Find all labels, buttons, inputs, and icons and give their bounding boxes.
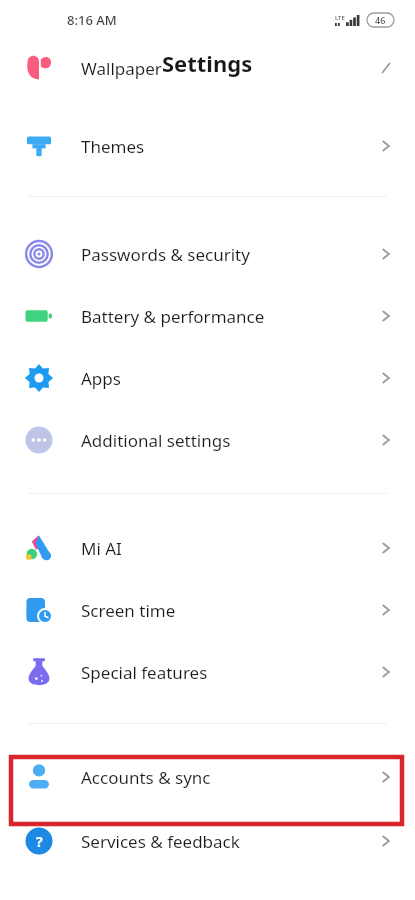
staticText: Services & feedback [81, 830, 240, 853]
staticText: Apps [81, 367, 121, 390]
button[interactable]: Mi AI [0, 517, 415, 579]
staticText: Mi AI [81, 537, 122, 560]
staticText: Special features [81, 661, 208, 684]
other: Open Mi AI [378, 540, 394, 556]
other: Open Special features [378, 664, 394, 680]
staticText: Accounts & sync [81, 766, 211, 789]
staticText: Screen time [81, 599, 176, 622]
staticText: Wallpaper [81, 57, 162, 80]
other: Edit Wallpaper [378, 60, 394, 76]
button[interactable]: Themes [0, 115, 415, 177]
button[interactable]: Apps [0, 347, 415, 409]
other: Open Services & feedback [378, 833, 394, 849]
other: Open Additional settings [378, 432, 394, 448]
staticText: Passwords & security [81, 243, 250, 266]
other: Open Screen time [378, 602, 394, 618]
other: Open Apps [378, 370, 394, 386]
other: Open Passwords & security [378, 246, 394, 262]
staticText: Battery & performance [81, 305, 265, 328]
button[interactable]: Additional settings [0, 409, 415, 471]
staticText: Settings [162, 48, 253, 78]
staticText: LTE [335, 14, 345, 22]
button[interactable]: Wallpaper [0, 53, 415, 83]
staticText: Additional settings [81, 429, 231, 452]
staticText: ? [36, 832, 43, 851]
staticText: 46 [375, 14, 386, 26]
other: Open Themes [378, 138, 394, 154]
staticText: Themes [81, 135, 145, 158]
button[interactable]: Special features [0, 641, 415, 703]
staticText: 8:16 AM [67, 11, 117, 29]
button[interactable]: Passwords & security [0, 223, 415, 285]
button[interactable]: Accounts & sync [0, 744, 415, 810]
other: Open Battery & performance [378, 308, 394, 324]
button[interactable]: Battery & performance [0, 285, 415, 347]
button[interactable]: Screen time [0, 579, 415, 641]
other: Open Accounts & sync [378, 769, 394, 785]
button[interactable]: ? [0, 810, 415, 872]
